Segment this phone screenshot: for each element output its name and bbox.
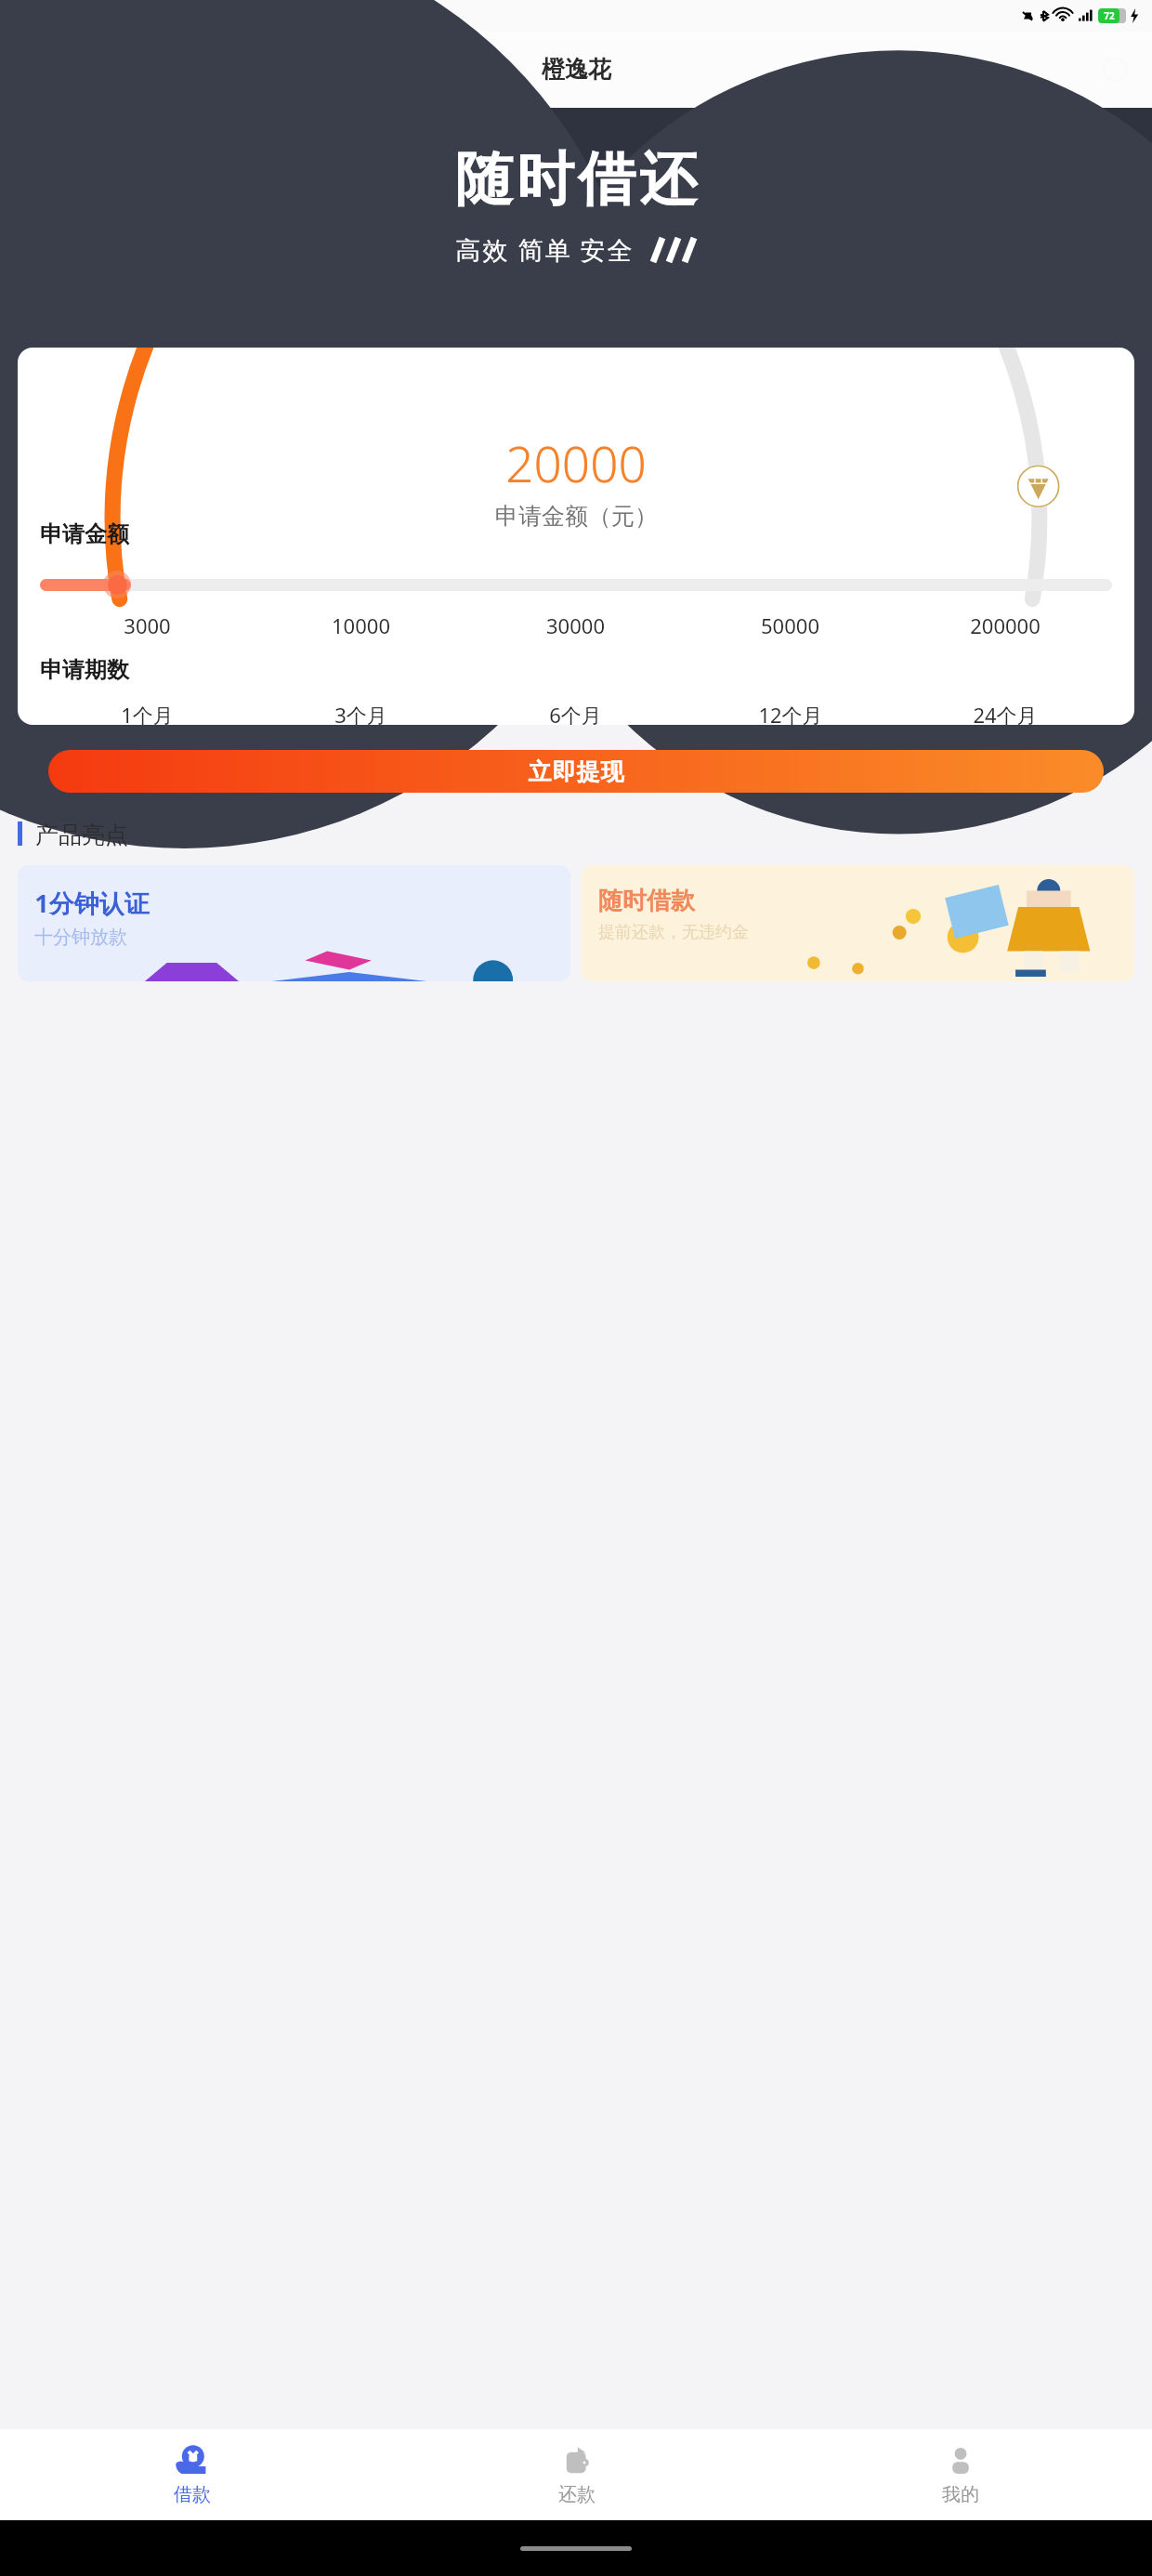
staticText: 24个月 [973, 701, 1038, 725]
staticText: 随时借款 [598, 886, 695, 916]
button[interactable]: 3个月 [254, 701, 468, 725]
staticText: 72 [1104, 9, 1115, 22]
staticText: 还款 [558, 2483, 596, 2506]
button[interactable]: 我的 [768, 2429, 1152, 2520]
staticText: 10000 [332, 611, 390, 639]
staticText: 6个月 [549, 701, 602, 725]
staticText: 申请期数 [40, 656, 129, 684]
staticText: 立即提现 [528, 757, 624, 786]
staticText: 提前还款，无违约金 [598, 922, 749, 943]
button[interactable]: 随时借款 [582, 865, 1134, 981]
button[interactable]: 借款 [0, 2429, 385, 2520]
staticText: 1分钟认证 [34, 886, 150, 920]
staticText: 3000 [124, 611, 171, 639]
staticText: 橙逸花 [542, 55, 611, 84]
button[interactable]: 立即提现 [48, 750, 1104, 793]
staticText: 借款 [174, 2483, 211, 2506]
staticText: 20000 [505, 429, 647, 496]
button[interactable]: 12个月 [683, 701, 897, 725]
staticText: 30000 [546, 611, 605, 639]
staticText: 3个月 [334, 701, 387, 725]
staticText: 200000 [970, 611, 1041, 639]
button[interactable]: 24个月 [897, 701, 1112, 725]
staticText: 申请金额 [40, 520, 129, 548]
staticText: 产品亮点 [35, 821, 128, 847]
staticText: 申请金额（元） [495, 502, 658, 531]
staticText: 50000 [761, 611, 819, 639]
staticText: 随时借还 [453, 143, 699, 216]
staticText: 高效 简单 安全 [455, 232, 635, 267]
staticText: 十分钟放款 [34, 926, 127, 949]
button[interactable]: 6个月 [468, 701, 683, 725]
button[interactable] [40, 571, 1112, 598]
staticText: 12个月 [758, 701, 823, 725]
button[interactable]: 1分钟认证 [18, 865, 570, 981]
button[interactable]: 还款 [385, 2429, 768, 2520]
staticText: 我的 [942, 2483, 979, 2506]
button[interactable]: 1个月 [40, 701, 254, 725]
staticText: 1个月 [121, 701, 174, 725]
